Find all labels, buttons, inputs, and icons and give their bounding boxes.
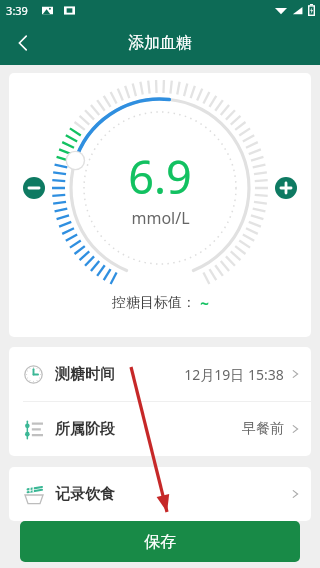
staticText: 控糖目标值： xyxy=(112,294,196,312)
button[interactable]: 测糖时间 xyxy=(9,347,311,401)
button[interactable]: Increase value xyxy=(273,175,299,201)
button[interactable]: 记录饮食 xyxy=(9,467,311,521)
button[interactable]: Decrease value xyxy=(21,175,47,201)
staticText: 测糖时间 xyxy=(55,365,115,384)
staticText: 所属阶段 xyxy=(55,420,115,439)
staticText: 保存 xyxy=(144,532,176,552)
staticText: 添加血糖 xyxy=(128,33,192,53)
staticText: mmol/L xyxy=(131,207,190,229)
staticText: 3:39 xyxy=(6,3,28,18)
button[interactable]: 保存 xyxy=(20,521,300,562)
button[interactable]: 所属阶段 xyxy=(9,402,311,456)
staticText: 6.9 xyxy=(128,146,192,207)
staticText: ~ xyxy=(196,293,209,313)
staticText: 早餐前 xyxy=(242,420,284,438)
button[interactable]: Back xyxy=(0,20,46,65)
staticText: 12月19日 15:38 xyxy=(184,365,284,384)
staticText: 记录饮食 xyxy=(55,485,115,504)
